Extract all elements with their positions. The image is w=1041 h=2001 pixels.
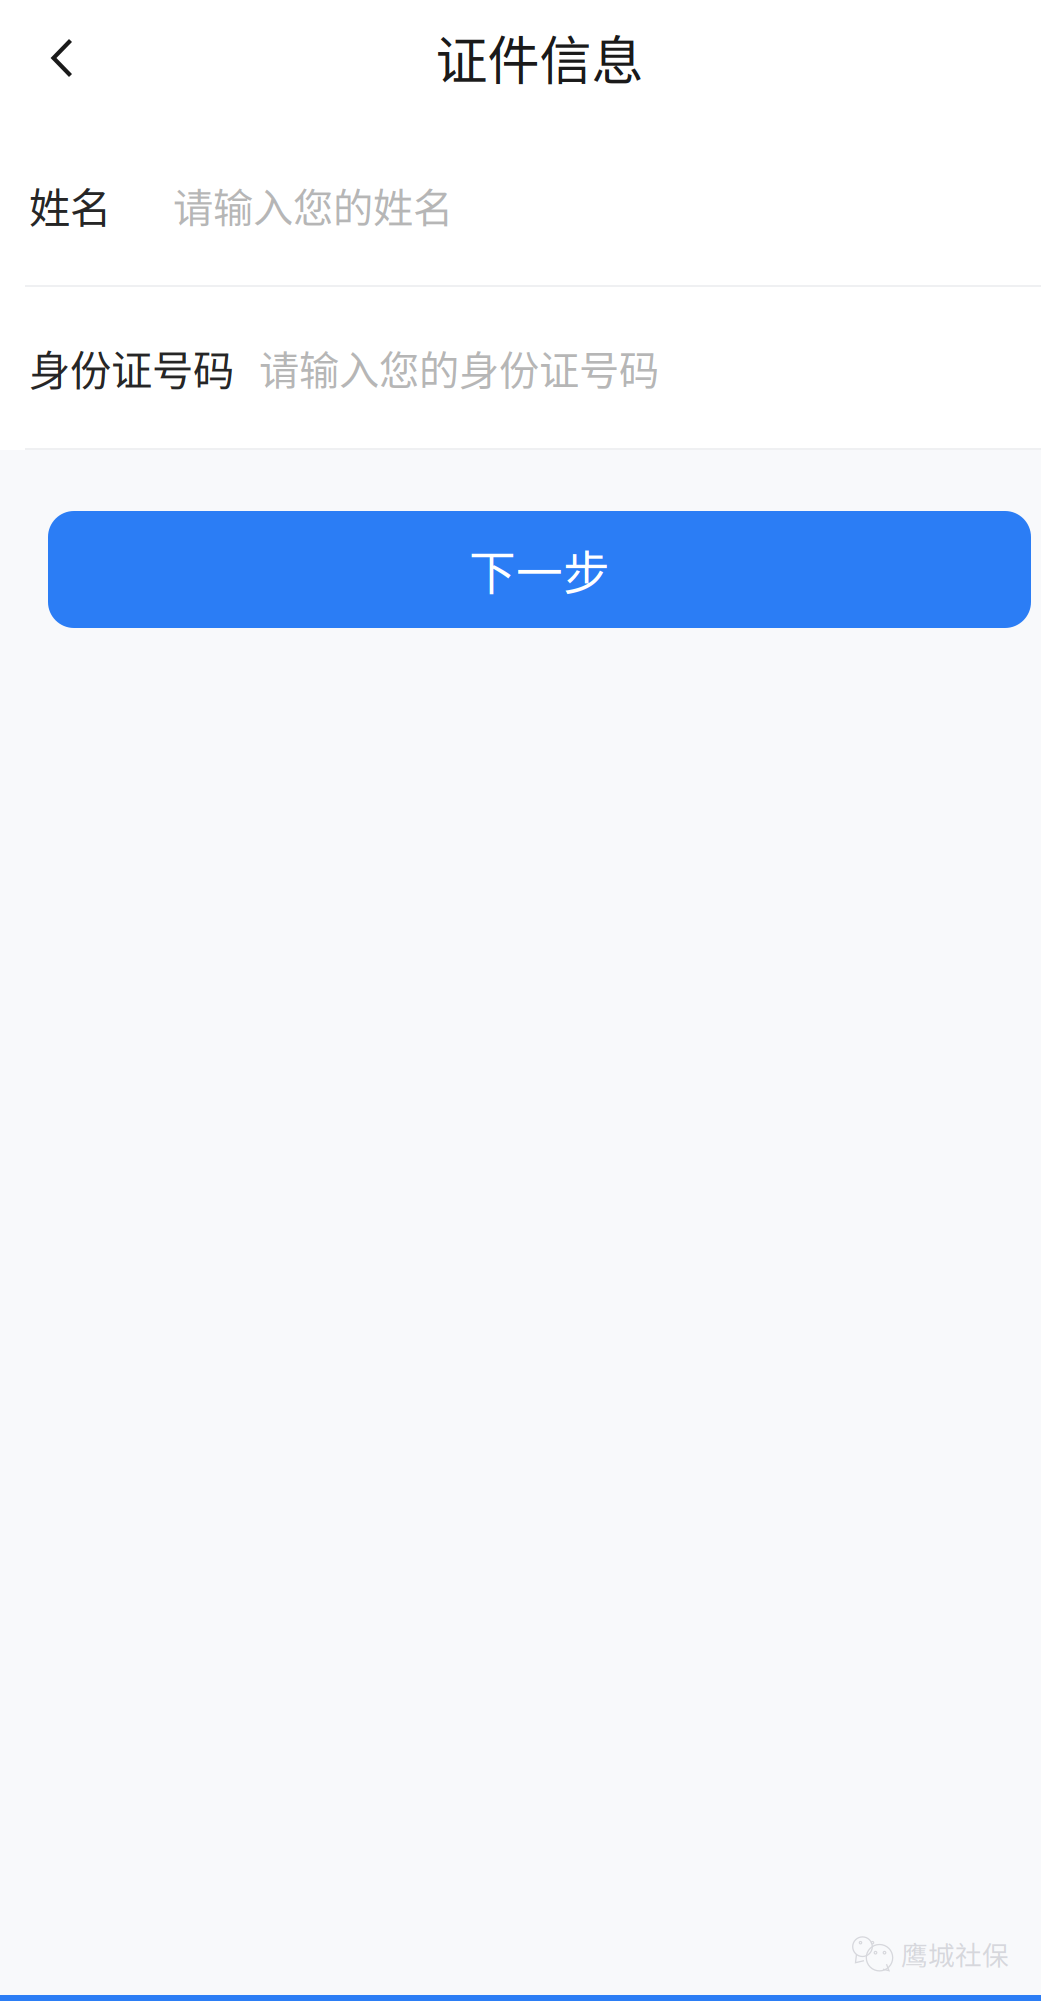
button[interactable]: 姓名	[0, 120, 1041, 285]
button[interactable]: 身份证号码	[0, 287, 1041, 448]
staticText: 姓名	[29, 175, 111, 235]
button[interactable]: Back	[24, 18, 100, 98]
button[interactable]: 下一步	[48, 511, 1031, 628]
staticText: 请输入您的姓名	[173, 176, 453, 234]
staticText: 身份证号码	[29, 338, 234, 397]
staticText: 下一步	[469, 536, 610, 603]
staticText: 请输入您的身份证号码	[259, 338, 659, 397]
staticText: 证件信息	[435, 19, 643, 95]
staticText: 鹰城社保	[901, 1934, 1009, 1973]
